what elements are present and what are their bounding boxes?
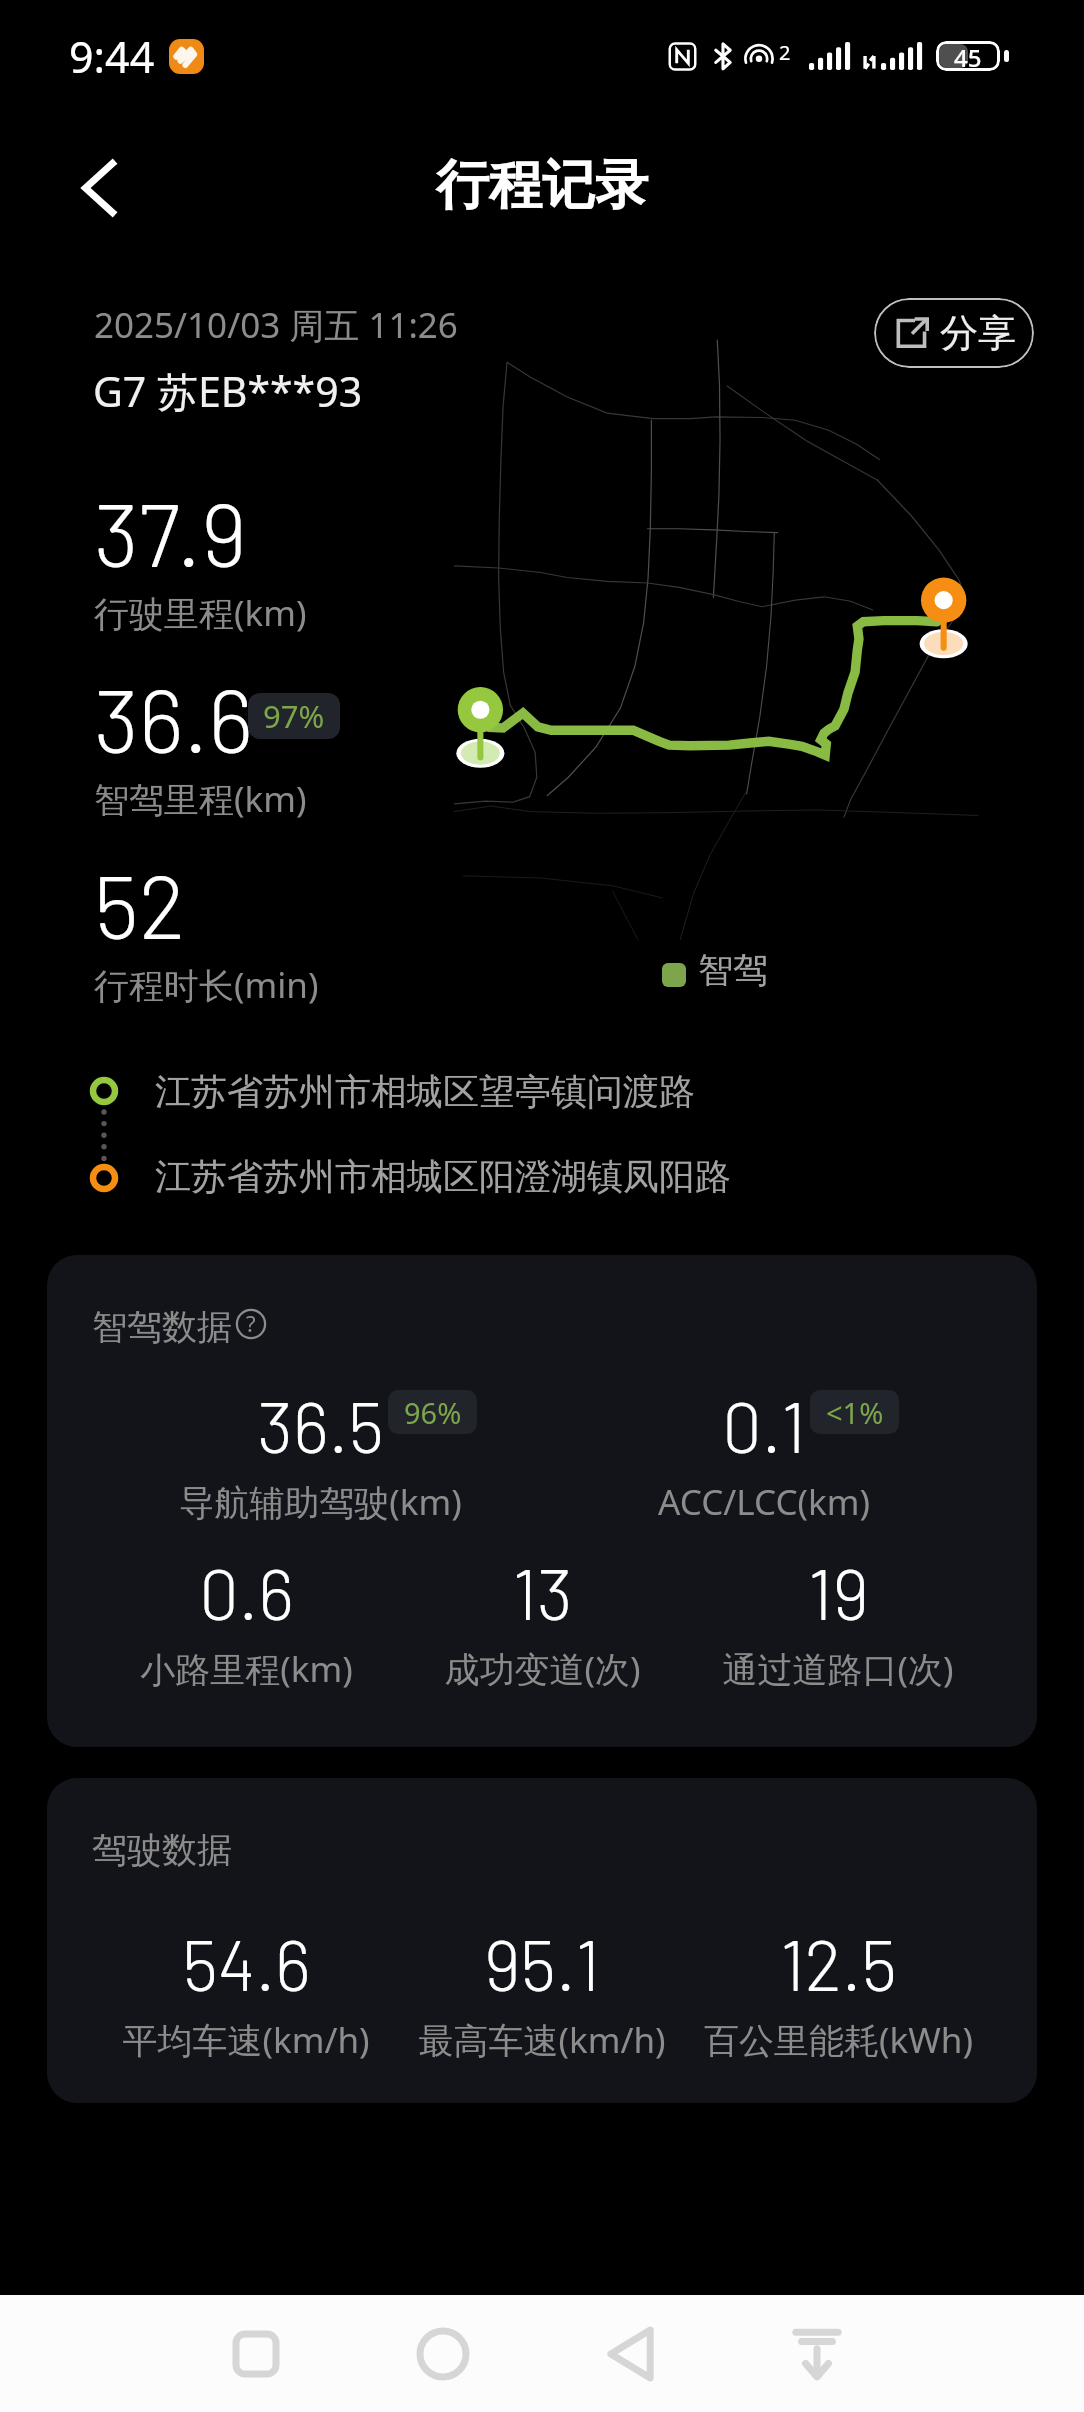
staticText: 智驾数据 <box>92 1305 232 1349</box>
button[interactable]: Recents <box>196 2295 316 2412</box>
staticText: 驾驶数据 <box>92 1828 232 1872</box>
staticText: 52 <box>94 851 186 957</box>
staticText: 江苏省苏州市相城区阳澄湖镇凤阳路 <box>155 1154 731 1199</box>
staticText: 9:44 <box>69 27 155 86</box>
staticText: 19 <box>808 1550 869 1634</box>
staticText: ACC/LCC(km) <box>658 1478 870 1526</box>
staticText: 最高车速(km/h) <box>418 2016 666 2064</box>
staticText: 45 <box>954 41 982 71</box>
staticText: 2 <box>779 39 791 66</box>
staticText: 36.5 <box>257 1383 384 1467</box>
staticText: 行驶里程(km) <box>94 589 307 637</box>
staticText: 导航辅助驾驶(km) <box>179 1478 462 1526</box>
staticText: 12.5 <box>780 1921 897 2005</box>
staticText: 95.1 <box>484 1921 600 2005</box>
staticText: 小路里程(km) <box>140 1645 353 1693</box>
staticText: 成功变道(次) <box>444 1645 641 1693</box>
staticText: G7 苏EB***93 <box>93 363 363 419</box>
staticText: 97% <box>263 695 325 737</box>
staticText: 百公里能耗(kWh) <box>704 2016 973 2064</box>
staticText: 36.6 <box>94 665 254 771</box>
staticText: 平均车速(km/h) <box>122 2016 370 2064</box>
staticText: 通过道路口(次) <box>722 1645 954 1693</box>
staticText: 37.9 <box>94 479 247 585</box>
staticText: 2025/10/03 周五 11:26 <box>94 301 458 349</box>
staticText: 行程记录 <box>436 152 648 219</box>
button[interactable]: Home <box>383 2295 503 2412</box>
staticText: 分享 <box>940 309 1016 357</box>
staticText: 行程时长(min) <box>94 961 319 1009</box>
staticText: <1% <box>826 1393 884 1432</box>
staticText: 智驾 <box>698 948 768 992</box>
button[interactable]: 分享 <box>874 298 1034 368</box>
staticText: 54.6 <box>182 1921 311 2005</box>
staticText: 96% <box>404 1393 462 1432</box>
button[interactable]: Info <box>235 1308 267 1340</box>
staticText: ? <box>246 1308 256 1338</box>
staticText: 江苏省苏州市相城区望亭镇问渡路 <box>155 1069 695 1114</box>
button[interactable]: Back <box>571 2295 691 2412</box>
staticText: 0.1 <box>722 1383 806 1467</box>
button[interactable]: Back <box>52 141 146 235</box>
button[interactable]: Hide keyboard <box>757 2295 877 2412</box>
staticText: 13 <box>512 1550 573 1634</box>
staticText: 0.6 <box>199 1550 294 1634</box>
staticText: 智驾里程(km) <box>94 775 307 823</box>
